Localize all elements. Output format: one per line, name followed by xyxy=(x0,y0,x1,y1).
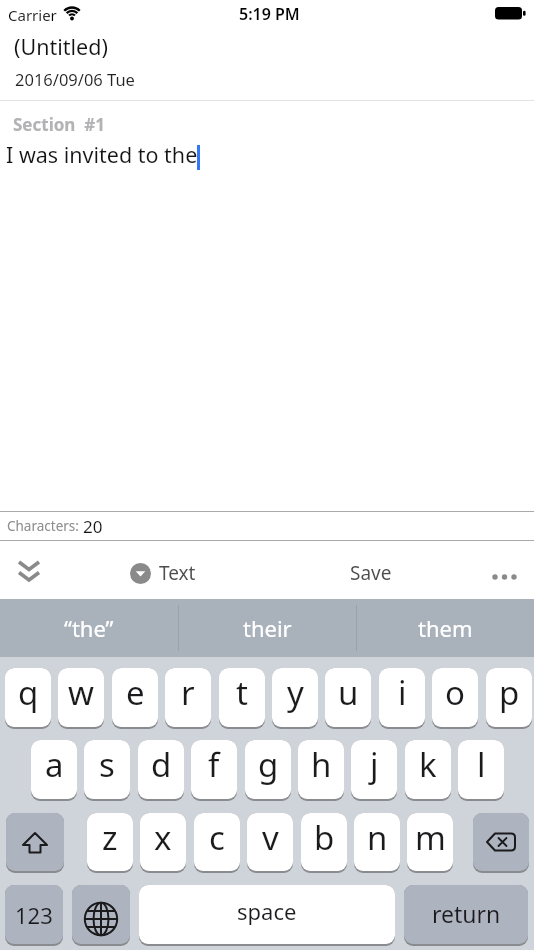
staticText: Save xyxy=(350,560,392,586)
staticText: s xyxy=(99,742,115,787)
button[interactable]: v xyxy=(247,813,293,873)
button[interactable] xyxy=(6,813,64,873)
button[interactable] xyxy=(473,813,529,873)
button[interactable]: h xyxy=(298,740,344,801)
staticText: them xyxy=(418,613,473,643)
staticText: w xyxy=(68,670,94,715)
staticText: space xyxy=(237,896,297,926)
staticText: j xyxy=(370,742,379,787)
staticText: c xyxy=(209,815,225,860)
button[interactable]: i xyxy=(379,668,425,729)
staticText: 2016/09/06 Tue xyxy=(15,68,135,90)
staticText: f xyxy=(208,742,220,787)
button[interactable]: x xyxy=(140,813,186,873)
button[interactable]: space xyxy=(139,885,395,946)
button[interactable]: y xyxy=(272,668,318,729)
button[interactable]: Text xyxy=(130,558,196,588)
button[interactable]: j xyxy=(351,740,397,801)
button[interactable]: l xyxy=(458,740,504,801)
staticText: p xyxy=(499,670,520,715)
staticText: i xyxy=(398,670,407,715)
button[interactable]: z xyxy=(87,813,133,873)
button[interactable]: u xyxy=(325,668,371,729)
button[interactable]: g xyxy=(245,740,291,801)
staticText: g xyxy=(258,742,279,787)
staticText: Section #1 xyxy=(13,113,105,136)
staticText: Carrier xyxy=(8,5,57,25)
button[interactable] xyxy=(72,885,130,946)
button[interactable]: n xyxy=(354,813,400,873)
staticText: (Untitled) xyxy=(14,32,108,61)
staticText: z xyxy=(102,815,118,860)
button[interactable]: s xyxy=(84,740,130,801)
staticText: their xyxy=(243,613,292,643)
button[interactable]: t xyxy=(219,668,265,729)
button[interactable]: them xyxy=(357,599,534,657)
staticText: 123 xyxy=(15,900,53,930)
button[interactable]: d xyxy=(138,740,184,801)
button[interactable]: o xyxy=(432,668,478,729)
button[interactable]: b xyxy=(301,813,347,873)
button[interactable]: “the” xyxy=(0,599,178,657)
button[interactable]: q xyxy=(5,668,51,729)
staticText: 5:19 PM xyxy=(239,3,300,25)
staticText: Characters: xyxy=(7,517,83,535)
staticText: h xyxy=(311,742,332,787)
button[interactable]: a xyxy=(31,740,77,801)
staticText: m xyxy=(415,815,446,860)
staticText: a xyxy=(45,742,64,787)
button[interactable]: 123 xyxy=(5,885,63,946)
button[interactable]: c xyxy=(194,813,240,873)
button[interactable]: m xyxy=(407,813,453,873)
button[interactable] xyxy=(12,556,46,590)
staticText: v xyxy=(262,815,279,860)
button[interactable]: p xyxy=(486,668,532,729)
staticText: y xyxy=(287,670,304,715)
staticText: n xyxy=(367,815,388,860)
staticText: e xyxy=(126,670,145,715)
staticText: return xyxy=(432,898,501,929)
staticText: b xyxy=(314,815,335,860)
staticText: I was invited to the xyxy=(6,140,198,169)
button[interactable]: e xyxy=(112,668,158,729)
button[interactable] xyxy=(490,560,524,588)
button[interactable]: r xyxy=(165,668,211,729)
staticText: x xyxy=(154,815,172,860)
staticText: d xyxy=(151,742,172,787)
staticText: 20 xyxy=(83,515,103,538)
staticText: q xyxy=(18,670,39,715)
staticText: o xyxy=(445,670,465,715)
staticText: Text xyxy=(159,560,196,586)
staticText: “the” xyxy=(64,613,114,643)
button[interactable]: their xyxy=(179,599,356,657)
staticText: t xyxy=(236,670,248,715)
button[interactable]: w xyxy=(58,668,104,729)
button[interactable]: k xyxy=(405,740,451,801)
button[interactable]: Save xyxy=(350,558,392,588)
staticText: u xyxy=(338,670,359,715)
staticText: r xyxy=(181,670,195,715)
staticText: k xyxy=(419,742,437,787)
button[interactable]: return xyxy=(404,885,528,946)
button[interactable]: f xyxy=(191,740,237,801)
staticText: l xyxy=(477,742,486,787)
